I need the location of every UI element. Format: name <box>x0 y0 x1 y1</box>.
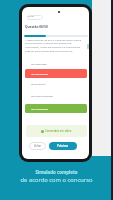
button[interactable]: Comentário em vídeo <box>26 125 87 137</box>
button[interactable]: da eficiência <box>25 79 87 88</box>
staticText: Questão 06/50 <box>25 25 48 29</box>
staticText: da impessoalidade <box>31 94 54 97</box>
button[interactable]: Voltar <box>29 142 46 150</box>
staticText: Próxima <box>57 144 69 148</box>
staticText: A determinação de que a Administração Pú… <box>25 38 82 53</box>
staticText: Sair do simulado <box>27 15 43 20</box>
staticText: Simulado completo <box>0 169 113 175</box>
button[interactable]: da impessoalidade <box>25 91 87 100</box>
staticText: Comentário em vídeo <box>45 129 72 133</box>
button[interactable]: da legalidade <box>25 59 87 68</box>
staticText: Voltar <box>34 144 42 148</box>
staticText: da legalidade <box>31 62 47 65</box>
button[interactable]: Próxima <box>49 142 77 150</box>
staticText: da supremacia <box>31 72 49 75</box>
button[interactable]: da supremacia <box>25 69 87 78</box>
button[interactable]: da moralidade <box>25 104 87 113</box>
staticText: da moralidade <box>31 107 49 110</box>
button[interactable]: Sair do simulado <box>27 15 43 20</box>
staticText: da eficiência <box>31 82 46 85</box>
staticText: de acordo com o concurso <box>0 176 113 184</box>
